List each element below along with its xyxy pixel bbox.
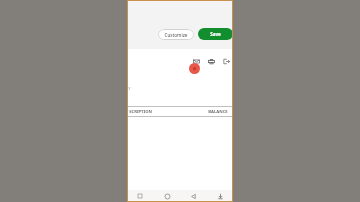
staticText: Customize <box>164 32 188 38</box>
staticText: SCRIPTION <box>129 109 152 115</box>
button[interactable]: Save customi <box>198 28 233 40</box>
staticText: BALANCE <box>208 109 228 115</box>
button[interactable]: Home <box>162 191 172 201</box>
button[interactable]: Email <box>192 57 200 65</box>
button[interactable]: Back <box>188 191 198 201</box>
button[interactable]: Recents <box>135 191 145 201</box>
staticText: y <box>128 85 131 90</box>
button[interactable]: Export <box>222 57 230 65</box>
button[interactable]: Print <box>207 57 215 65</box>
staticText: Save customi <box>204 31 227 37</box>
button[interactable]: Customize <box>158 29 194 40</box>
button[interactable]: Downloads <box>215 191 225 201</box>
